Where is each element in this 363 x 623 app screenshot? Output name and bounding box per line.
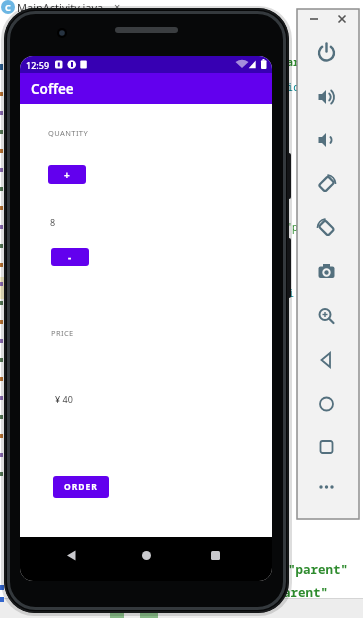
button[interactable] (314, 392, 339, 417)
staticText: × (114, 0, 121, 14)
button[interactable] (314, 85, 339, 110)
button[interactable] (57, 541, 85, 569)
staticText: "p (286, 220, 298, 234)
staticText: ic (287, 80, 299, 94)
staticText: MainActivity.java (17, 0, 104, 15)
staticText: C (5, 1, 11, 13)
staticText: 12:59 (26, 59, 50, 71)
button[interactable] (314, 216, 339, 241)
staticText: ¥ 40 (55, 393, 73, 405)
staticText: Coffee (31, 80, 74, 98)
staticText: ORDER (64, 481, 98, 493)
staticText: PRICE (51, 328, 74, 338)
staticText: ar (287, 55, 299, 69)
button[interactable]: + (48, 165, 86, 184)
button[interactable] (314, 128, 339, 153)
staticText: 8 (50, 216, 56, 228)
button[interactable] (314, 41, 339, 66)
button[interactable] (314, 435, 339, 460)
staticText: + (64, 168, 70, 182)
staticText: QUANTITY (48, 128, 89, 138)
staticText: i (288, 286, 294, 300)
staticText: arent" (283, 584, 329, 601)
button[interactable] (314, 475, 339, 500)
button[interactable] (314, 172, 339, 197)
button[interactable] (314, 304, 339, 329)
button[interactable] (314, 260, 339, 285)
button[interactable]: ORDER (53, 476, 109, 498)
button[interactable] (201, 541, 229, 569)
staticText: - (68, 250, 72, 264)
button[interactable] (314, 348, 339, 373)
staticText: "parent" (288, 561, 349, 578)
button[interactable]: - (51, 248, 89, 266)
button[interactable] (132, 541, 160, 569)
